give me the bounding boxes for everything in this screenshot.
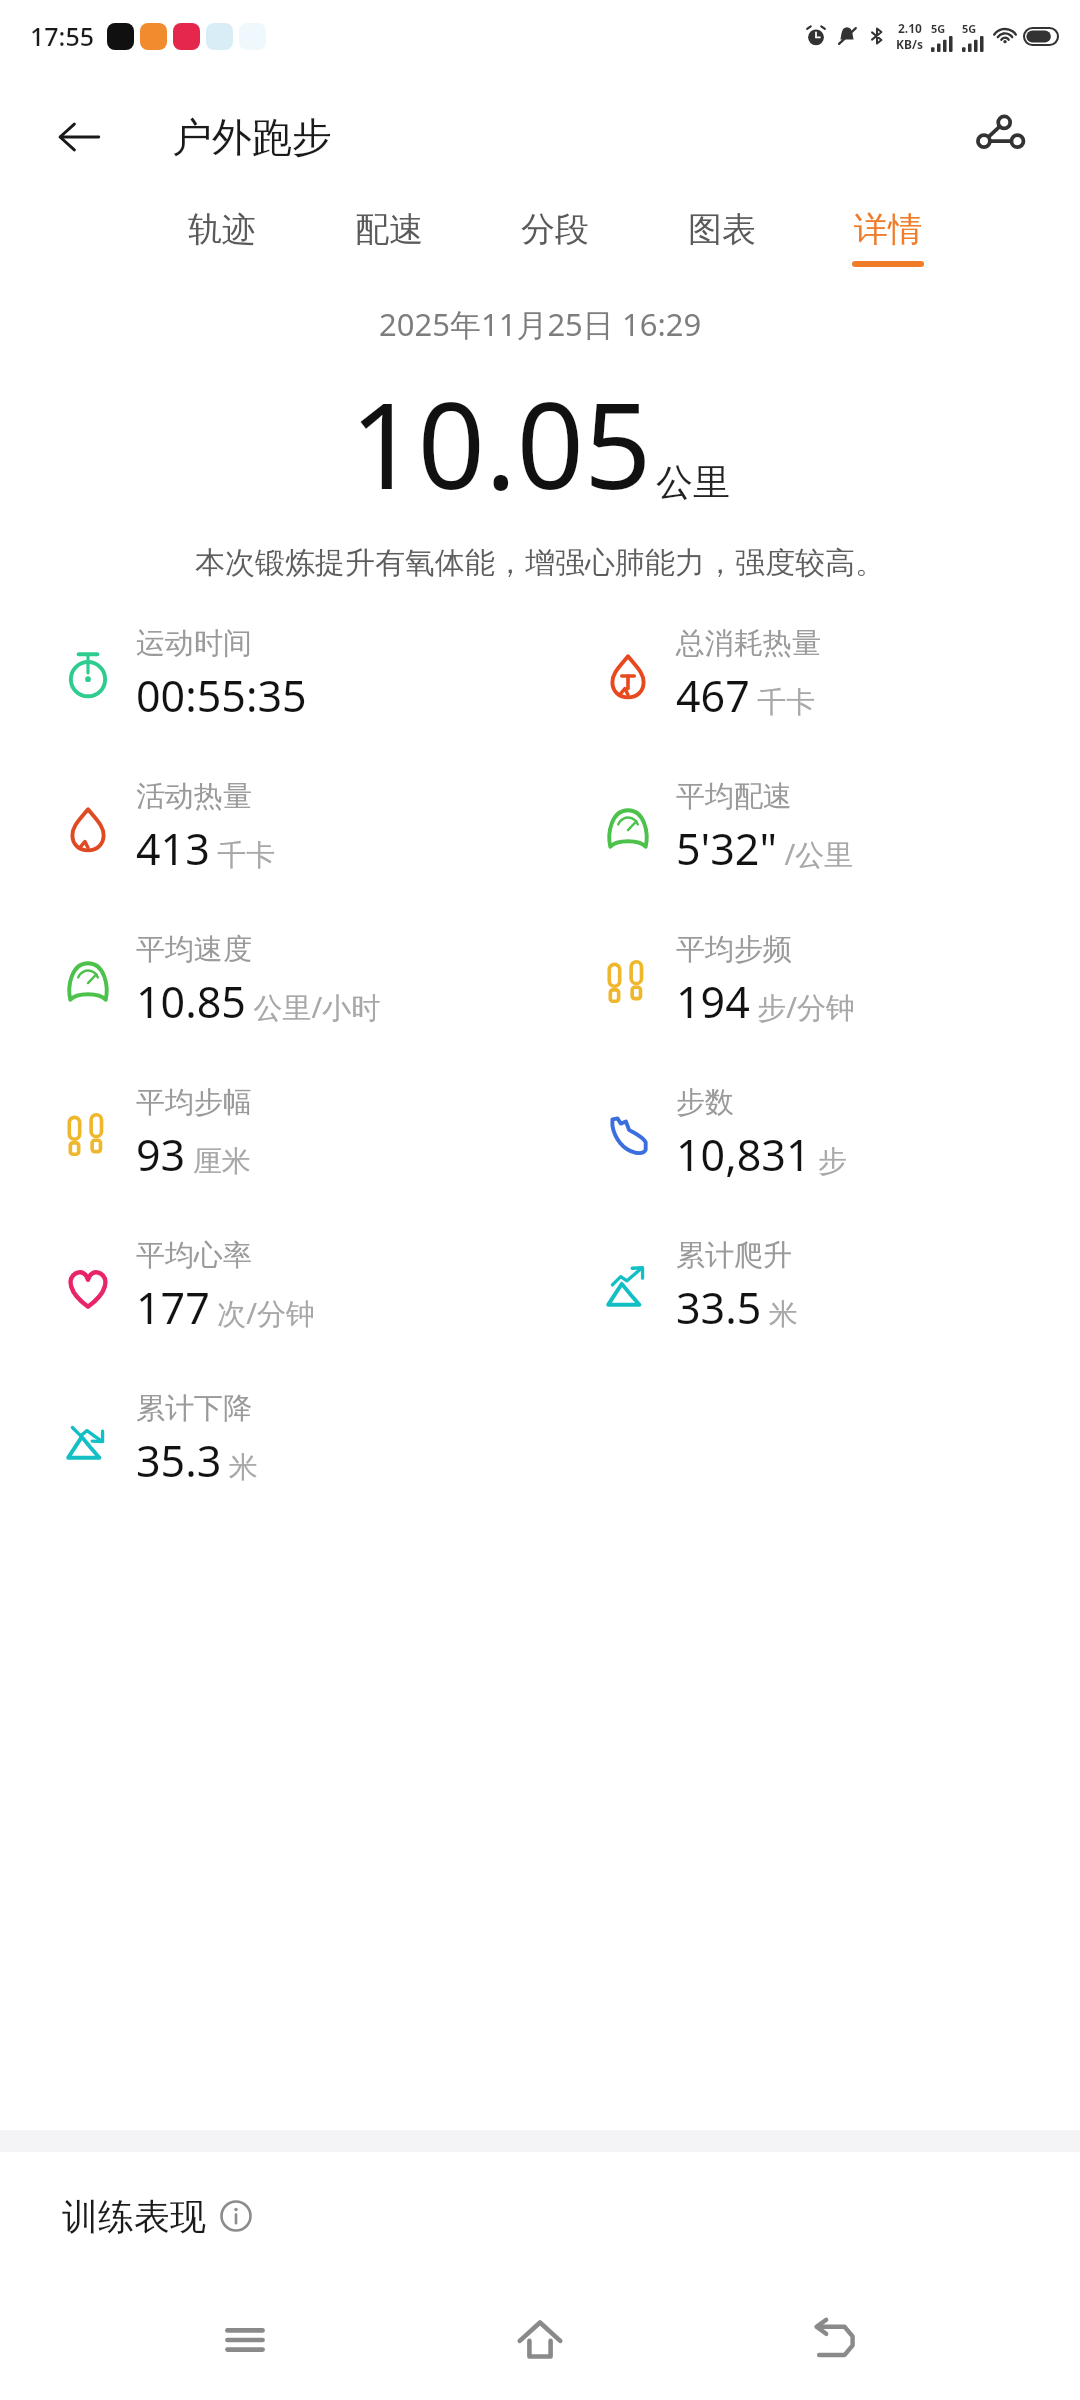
- button[interactable]: 总消耗热量: [540, 598, 1080, 751]
- button[interactable]: 详情: [846, 202, 930, 273]
- staticText: 平均速度: [136, 931, 252, 968]
- button[interactable]: Home: [490, 2290, 590, 2390]
- button[interactable]: 训练表现: [0, 2152, 1080, 2280]
- staticText: 平均步频: [676, 931, 792, 968]
- staticText: 5G: [962, 21, 977, 36]
- button[interactable]: 步数: [540, 1057, 1080, 1210]
- staticText: 194 步/分钟: [676, 972, 856, 1031]
- staticText: 配速: [355, 208, 423, 251]
- button[interactable]: Recent apps: [195, 2290, 295, 2390]
- button[interactable]: 分段: [513, 202, 597, 273]
- button[interactable]: Back: [785, 2290, 885, 2390]
- button[interactable]: 配速: [347, 202, 431, 273]
- staticText: 活动热量: [136, 778, 252, 815]
- staticText: 33.5 米: [676, 1278, 798, 1337]
- staticText: 10.05: [350, 363, 652, 524]
- button[interactable]: 图表: [680, 202, 764, 273]
- button[interactable]: 活动热量: [0, 751, 540, 904]
- staticText: 轨迹: [188, 208, 256, 251]
- button[interactable]: 平均步幅: [0, 1057, 540, 1210]
- staticText: 00:55:35: [136, 666, 307, 725]
- staticText: 图表: [688, 208, 756, 251]
- button[interactable]: 平均心率: [0, 1210, 540, 1363]
- staticText: 分段: [521, 208, 589, 251]
- staticText: 累计下降: [136, 1390, 252, 1427]
- staticText: 户外跑步: [172, 112, 332, 162]
- staticText: 平均步幅: [136, 1084, 252, 1121]
- staticText: 总消耗热量: [676, 625, 821, 662]
- staticText: 93 厘米: [136, 1125, 251, 1184]
- staticText: 10,831 步: [676, 1125, 848, 1184]
- staticText: 本次锻炼提升有氧体能，增强心肺能力，强度较高。: [195, 544, 885, 582]
- staticText: 5G: [931, 21, 946, 36]
- button[interactable]: Share: [964, 102, 1034, 172]
- staticText: 运动时间: [136, 625, 252, 662]
- button[interactable]: 平均速度: [0, 904, 540, 1057]
- button[interactable]: Back: [46, 105, 110, 169]
- staticText: 平均心率: [136, 1237, 252, 1274]
- staticText: 467 千卡: [676, 666, 816, 725]
- staticText: 35.3 米: [136, 1431, 258, 1490]
- staticText: KB/s: [896, 36, 923, 52]
- staticText: 公里: [656, 459, 730, 506]
- staticText: 10.85 公里/小时: [136, 972, 381, 1031]
- button[interactable]: 平均配速: [540, 751, 1080, 904]
- staticText: 177 次/分钟: [136, 1278, 316, 1337]
- staticText: 2025年11月25日 16:29: [379, 303, 702, 345]
- staticText: 17:55: [30, 19, 95, 53]
- staticText: 训练表现: [62, 2194, 206, 2239]
- button[interactable]: 平均步频: [540, 904, 1080, 1057]
- staticText: 详情: [854, 208, 922, 251]
- button[interactable]: 累计下降: [0, 1363, 540, 1516]
- staticText: 413 千卡: [136, 819, 276, 878]
- staticText: 2.10: [898, 20, 922, 36]
- button[interactable]: 运动时间: [0, 598, 540, 751]
- button[interactable]: 累计爬升: [540, 1210, 1080, 1363]
- button[interactable]: 轨迹: [180, 202, 264, 273]
- staticText: 5'32" /公里: [676, 819, 854, 878]
- staticText: 累计爬升: [676, 1237, 792, 1274]
- staticText: 平均配速: [676, 778, 792, 815]
- staticText: 步数: [676, 1084, 734, 1121]
